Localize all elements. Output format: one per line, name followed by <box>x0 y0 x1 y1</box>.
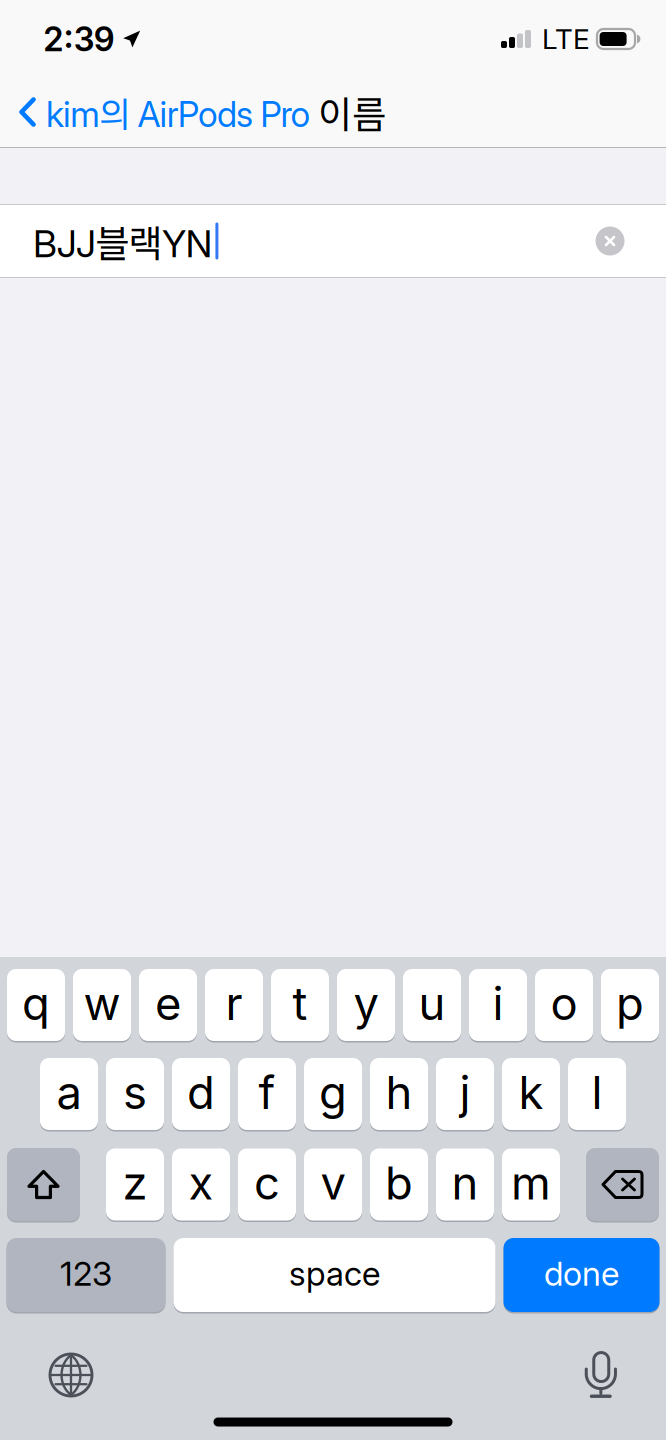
button[interactable]: r <box>205 969 263 1041</box>
button[interactable]: Shift <box>7 1148 80 1221</box>
button[interactable]: f <box>238 1058 296 1130</box>
staticText: f <box>258 1065 275 1120</box>
staticText: x <box>188 1156 213 1210</box>
staticText: y <box>353 976 378 1031</box>
button[interactable]: x <box>172 1148 230 1220</box>
staticText: 이름 <box>318 85 386 139</box>
staticText: BJJ블랙YN <box>33 214 212 268</box>
button[interactable]: space <box>173 1238 495 1312</box>
staticText: 123 <box>60 1253 112 1294</box>
staticText: p <box>616 976 644 1031</box>
button[interactable]: b <box>370 1148 428 1220</box>
button[interactable]: o <box>535 969 593 1041</box>
button[interactable]: y <box>337 969 395 1041</box>
button[interactable]: Delete <box>586 1148 659 1221</box>
button[interactable]: l <box>568 1058 626 1130</box>
staticText: o <box>550 976 577 1031</box>
button[interactable]: 123 <box>6 1238 165 1312</box>
staticText: space <box>289 1253 380 1294</box>
staticText: e <box>155 976 181 1031</box>
button[interactable]: n <box>436 1148 494 1220</box>
button[interactable]: q <box>7 969 65 1041</box>
staticText: u <box>418 976 445 1031</box>
button[interactable]: v <box>304 1148 362 1220</box>
staticText: d <box>187 1065 215 1120</box>
staticText: done <box>544 1253 619 1294</box>
button[interactable]: Dictation <box>570 1344 632 1406</box>
button[interactable]: Next keyboard <box>40 1344 102 1406</box>
staticText: k <box>518 1065 543 1120</box>
staticText: r <box>225 976 242 1031</box>
button[interactable]: p <box>601 969 659 1041</box>
button[interactable]: g <box>304 1058 362 1130</box>
staticText: w <box>83 976 120 1031</box>
button[interactable]: a <box>40 1058 98 1130</box>
button[interactable]: j <box>436 1058 494 1130</box>
staticText: a <box>56 1065 81 1120</box>
button[interactable]: s <box>106 1058 164 1130</box>
button[interactable]: d <box>172 1058 230 1130</box>
button[interactable]: m <box>502 1148 560 1220</box>
staticText: j <box>459 1065 470 1120</box>
button[interactable]: w <box>73 969 131 1041</box>
staticText: c <box>254 1156 280 1210</box>
staticText: q <box>22 976 50 1031</box>
button[interactable]: c <box>238 1148 296 1220</box>
button[interactable]: done <box>503 1238 659 1312</box>
staticText: v <box>320 1156 345 1210</box>
staticText: s <box>123 1065 147 1120</box>
button[interactable]: i <box>469 969 527 1041</box>
staticText: b <box>385 1156 413 1210</box>
staticText: h <box>385 1065 412 1120</box>
staticText: z <box>122 1156 147 1210</box>
button[interactable]: e <box>139 969 197 1041</box>
staticText: n <box>451 1156 478 1210</box>
staticText: l <box>591 1065 602 1120</box>
staticText: t <box>292 976 307 1031</box>
staticText: 2:39 <box>43 19 115 59</box>
button[interactable]: t <box>271 969 329 1041</box>
staticText: m <box>511 1156 551 1210</box>
staticText: i <box>492 976 503 1031</box>
staticText: g <box>319 1065 347 1120</box>
button[interactable]: h <box>370 1058 428 1130</box>
staticText: kim의 AirPods Pro <box>46 87 310 137</box>
button[interactable]: k <box>502 1058 560 1130</box>
button[interactable]: Back to kim의 AirPods Pro <box>0 79 320 145</box>
button[interactable]: u <box>403 969 461 1041</box>
staticText: LTE <box>542 22 590 56</box>
button[interactable]: z <box>106 1148 164 1220</box>
button[interactable]: Clear text <box>583 211 637 271</box>
